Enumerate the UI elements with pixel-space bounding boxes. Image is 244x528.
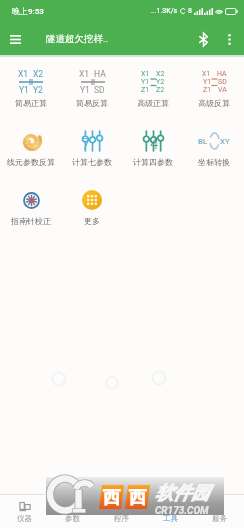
staticText: Z2: [156, 86, 165, 94]
staticText: 高级正算: [137, 98, 169, 108]
staticText: VA: [218, 86, 227, 94]
staticText: 工具: [163, 514, 178, 523]
staticText: BL: [198, 137, 208, 146]
button[interactable]: 4: [122, 116, 183, 175]
staticText: Y2: [33, 85, 43, 95]
staticText: 简易反算: [76, 98, 108, 108]
staticText: XY: [220, 137, 230, 146]
staticText: Y1: [19, 85, 29, 95]
staticText: 7: [82, 135, 91, 153]
staticText: 更多: [84, 216, 100, 226]
staticText: CR173.COM: [155, 505, 209, 517]
staticText: 服务: [212, 514, 227, 523]
staticText: X1: [141, 70, 150, 78]
staticText: 4: [150, 135, 159, 153]
button[interactable]: 参数: [48, 495, 97, 528]
button[interactable]: 服务: [195, 495, 244, 528]
staticText: 程序: [114, 514, 129, 523]
button[interactable]: X1: [122, 57, 183, 116]
staticText: Z1: [203, 86, 212, 94]
button[interactable]: Open navigation menu: [0, 24, 30, 54]
button[interactable]: 更多: [61, 175, 122, 234]
staticText: 线元参数反算: [7, 157, 55, 167]
button[interactable]: X1: [183, 57, 244, 116]
staticText: HA: [94, 69, 106, 79]
staticText: ...1.3K/s: [151, 7, 178, 15]
staticText: 隧道超欠挖样..: [46, 33, 109, 45]
staticText: 计算七参数: [72, 157, 112, 167]
staticText: 西: [129, 487, 146, 508]
staticText: X1: [202, 70, 211, 78]
staticText: 仪器: [17, 514, 32, 523]
staticText: SD: [94, 85, 105, 95]
staticText: X2: [156, 70, 165, 78]
button[interactable]: 线元参数反算: [0, 116, 61, 175]
staticText: Y2: [156, 78, 165, 86]
staticText: Z1: [141, 86, 150, 94]
staticText: 指南针校正: [11, 216, 51, 226]
button[interactable]: 工具: [146, 495, 195, 528]
staticText: 坐标转换: [198, 157, 230, 167]
button[interactable]: 仪器: [0, 495, 48, 528]
staticText: SD: [218, 78, 227, 86]
button[interactable]: More options: [217, 27, 241, 51]
button[interactable]: 指南针校正: [0, 175, 61, 234]
staticText: 晚上9:53: [12, 6, 44, 16]
staticText: Y1: [80, 85, 90, 95]
button[interactable]: X1: [0, 57, 61, 116]
staticText: 简易正算: [15, 98, 47, 108]
button[interactable]: 程序: [97, 495, 146, 528]
staticText: X2: [33, 69, 44, 79]
button[interactable]: BL: [183, 116, 244, 175]
button[interactable]: Bluetooth: [189, 25, 217, 53]
staticText: 计算四参数: [133, 157, 173, 167]
staticText: Y1: [203, 78, 212, 86]
staticText: 参数: [65, 514, 80, 523]
staticText: 8: [188, 7, 192, 15]
staticText: HA: [217, 70, 227, 78]
staticText: 高级反算: [198, 98, 230, 108]
staticText: 软件园: [155, 482, 209, 505]
button[interactable]: X1: [61, 57, 122, 116]
staticText: Y1: [141, 78, 150, 86]
staticText: X1: [18, 69, 29, 79]
staticText: 西: [103, 487, 120, 508]
staticText: X1: [79, 69, 90, 79]
button[interactable]: 7: [61, 116, 122, 175]
